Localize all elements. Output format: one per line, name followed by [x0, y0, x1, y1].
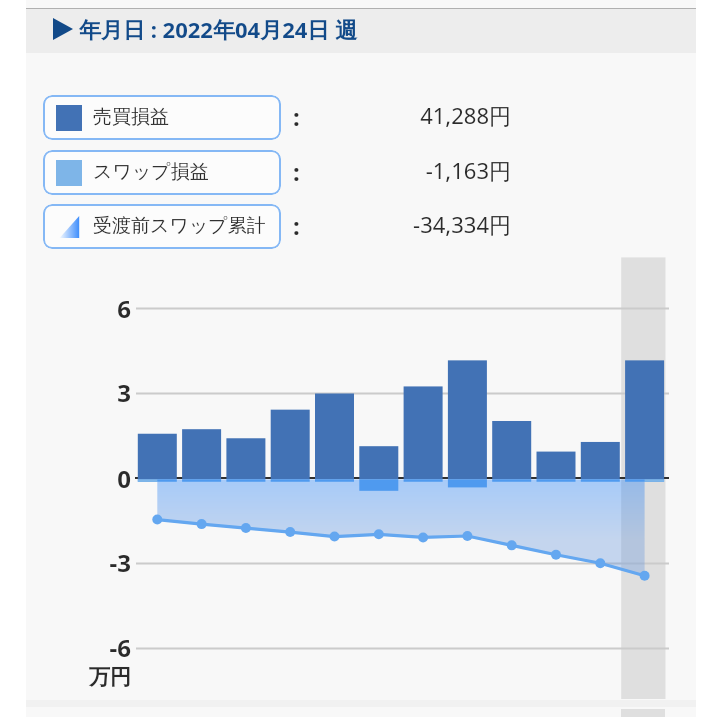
staticText: 3	[0, 376, 131, 409]
button[interactable]: 年月日 : 2022年04月24日 週	[26, 8, 696, 53]
staticText: 6	[0, 292, 131, 325]
staticText: 0	[0, 462, 131, 495]
staticText: -34,334円	[0, 209, 511, 239]
staticText: 41,288円	[0, 100, 511, 130]
staticText: :	[293, 209, 300, 242]
staticText: 受渡前スワップ累計	[93, 214, 266, 238]
staticText: スワップ損益	[93, 160, 209, 184]
staticText: -1,163円	[0, 155, 511, 185]
button[interactable]: 受渡前スワップ累計	[43, 204, 281, 249]
button[interactable]: 売買損益	[43, 95, 281, 140]
staticText: :	[293, 155, 300, 188]
staticText: :	[293, 100, 300, 133]
staticText: -3	[0, 546, 131, 579]
staticText: -6	[0, 631, 131, 664]
staticText: 年月日 : 2022年04月24日 週	[79, 14, 358, 44]
staticText: 万円	[89, 664, 131, 690]
button[interactable]: スワップ損益	[43, 150, 281, 195]
staticText: 売買損益	[93, 105, 169, 129]
